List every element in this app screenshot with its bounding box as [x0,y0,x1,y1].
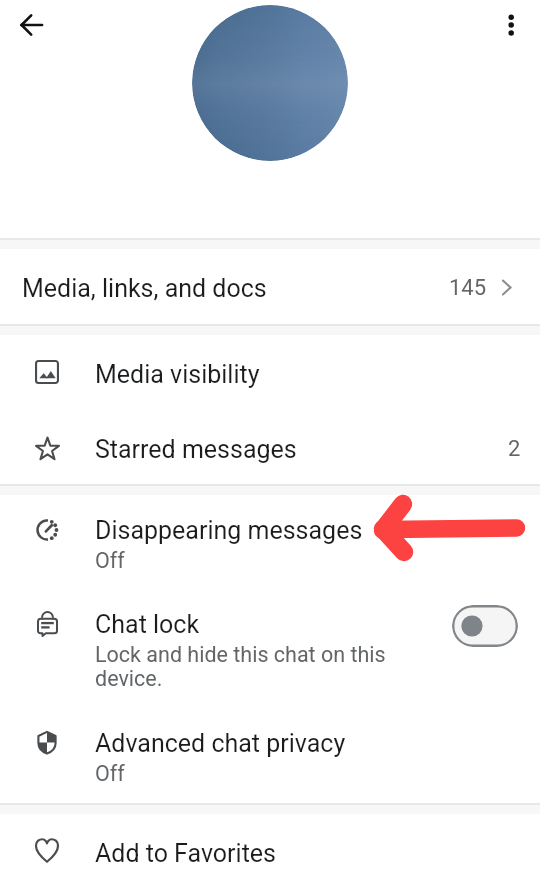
button[interactable]: Add to Favorites [0,809,540,884]
staticText: Advanced chat privacy [95,729,346,758]
button[interactable]: More options [489,2,534,47]
staticText: 2 [508,436,521,462]
button[interactable]: Disappearing messages [0,490,540,580]
staticText: Off [95,761,125,786]
button[interactable]: Chat lock [0,580,540,700]
staticText: Media, links, and docs [22,274,267,303]
staticText: Chat lock [95,610,200,639]
staticText: 145 [449,275,487,301]
button[interactable]: Profile photo [192,5,348,161]
staticText: Disappearing messages [95,516,363,545]
staticText: Off [95,548,125,573]
button[interactable]: Media, links, and docs [0,245,540,323]
staticText: Lock and hide this chat on this device. [95,642,386,691]
staticText: Add to Favorites [95,839,276,868]
staticText: Media visibility [95,360,260,389]
button[interactable]: Back [2,2,48,48]
button[interactable]: Media visibility [0,329,540,407]
button[interactable]: Starred messages [0,407,540,484]
button[interactable]: Chat lock toggle [452,605,518,647]
staticText: Starred messages [95,435,297,464]
button[interactable]: Advanced chat privacy [0,700,540,803]
